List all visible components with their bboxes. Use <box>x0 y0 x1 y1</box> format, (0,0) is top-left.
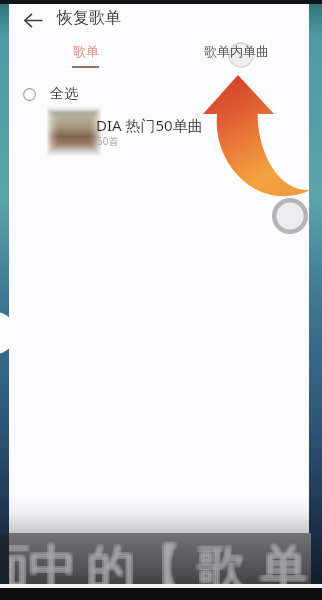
staticText: 50首 <box>97 134 119 148</box>
staticText: 单 <box>258 538 306 584</box>
staticText: 【 <box>134 536 182 584</box>
staticText: 【 <box>136 538 184 584</box>
staticText: 的 <box>85 538 133 584</box>
button[interactable]: 全选 <box>9 82 309 106</box>
button[interactable]: 歌单内单曲 <box>200 43 272 67</box>
staticText: 【 <box>136 536 184 584</box>
staticText: 单 <box>260 538 308 584</box>
staticText: 歌 <box>199 540 247 584</box>
staticText: 歌单 <box>73 43 99 59</box>
staticText: 中 <box>31 538 79 584</box>
staticText: 单 <box>262 538 310 584</box>
staticText: 面 <box>0 538 28 584</box>
staticText: 中 <box>27 538 75 584</box>
button[interactable]: DIA 热门50单曲 <box>9 105 309 159</box>
staticText: 歌 <box>195 536 243 584</box>
staticText: 歌 <box>199 536 247 584</box>
staticText: 歌 <box>195 540 243 584</box>
staticText: 面 <box>0 536 32 584</box>
staticText: 的 <box>89 540 137 584</box>
staticText: 面 <box>0 538 30 584</box>
staticText: 中 <box>29 538 77 584</box>
staticText: 的 <box>85 536 133 584</box>
staticText: 【 <box>132 538 180 584</box>
staticText: 的 <box>87 540 135 584</box>
staticText: 歌 <box>197 538 245 584</box>
staticText: 歌单内单曲 <box>204 43 269 59</box>
staticText: 面 <box>0 540 30 584</box>
staticText: 歌 <box>199 538 247 584</box>
staticText: 中 <box>31 540 79 584</box>
staticText: 【 <box>132 536 180 584</box>
button[interactable]: 歌单 <box>61 43 109 73</box>
staticText: 全选 <box>50 85 78 103</box>
staticText: 面 <box>0 540 32 584</box>
staticText: 中 <box>27 536 75 584</box>
staticText: 歌 <box>197 536 245 584</box>
staticText: 单 <box>258 536 306 584</box>
staticText: 歌 <box>195 538 243 584</box>
staticText: 的 <box>87 536 135 584</box>
staticText: 面 <box>0 538 32 584</box>
staticText: 中 <box>27 540 75 584</box>
staticText: 恢复歌单 <box>57 8 121 28</box>
staticText: 【 <box>132 540 180 584</box>
staticText: 单 <box>262 536 310 584</box>
staticText: 歌 <box>197 540 245 584</box>
staticText: 中 <box>31 536 79 584</box>
staticText: 单 <box>260 536 308 584</box>
staticText: 单 <box>260 540 308 584</box>
staticText: 面 <box>0 536 30 584</box>
staticText: 单 <box>262 540 310 584</box>
staticText: 的 <box>89 538 137 584</box>
staticText: DIA 热门50单曲 <box>96 115 203 135</box>
staticText: 【 <box>134 540 182 584</box>
button[interactable]: Back <box>20 7 46 33</box>
staticText: 中 <box>29 536 77 584</box>
staticText: 单 <box>258 540 306 584</box>
staticText: 中 <box>29 540 77 584</box>
staticText: 面 <box>0 536 28 584</box>
staticText: 的 <box>85 540 133 584</box>
staticText: 【 <box>136 540 184 584</box>
staticText: 的 <box>87 538 135 584</box>
staticText: 面 <box>0 540 28 584</box>
staticText: 的 <box>89 536 137 584</box>
staticText: 【 <box>134 538 182 584</box>
